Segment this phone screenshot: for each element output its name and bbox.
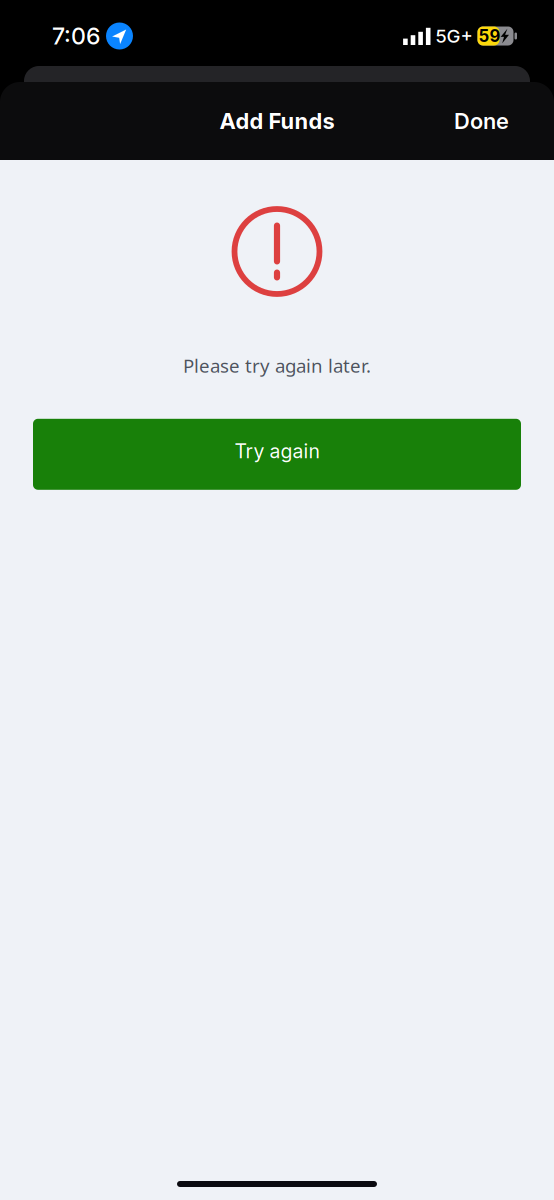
staticText: Add Funds [219, 108, 334, 134]
staticText: 7:06 [52, 22, 100, 50]
staticText: Please try again later. [183, 353, 371, 378]
staticText: 5G+ [435, 25, 472, 47]
staticText: Try again [234, 439, 319, 463]
button[interactable]: Try again [33, 419, 521, 490]
button[interactable]: Done [444, 96, 519, 146]
staticText: 59 [478, 26, 500, 46]
staticText: Done [454, 108, 509, 134]
